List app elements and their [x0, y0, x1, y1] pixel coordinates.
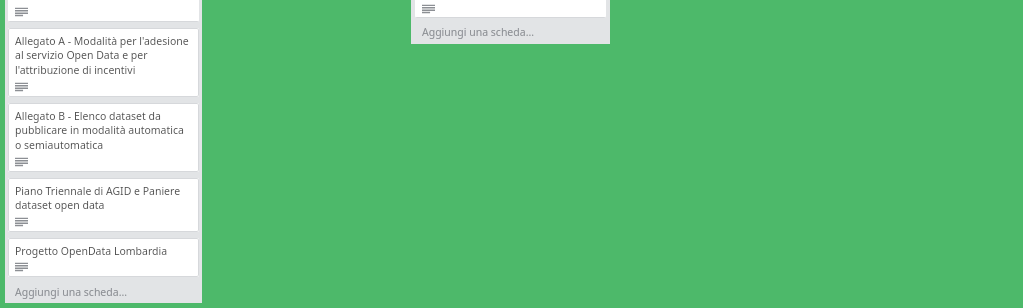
- button[interactable]: Aggiungi una scheda...: [8, 281, 199, 302]
- staticText: Progetto OpenData Lombardia: [15, 244, 168, 258]
- other: Description: [15, 157, 28, 167]
- button[interactable]: Progetto OpenData Lombardia: [8, 238, 199, 277]
- staticText: Allegato A - Modalità per l'adesione al …: [15, 34, 192, 78]
- staticText: Piano Triennale di AGID e Paniere datase…: [15, 184, 192, 213]
- other: Description: [15, 262, 28, 272]
- staticText: Aggiungi una scheda...: [422, 25, 535, 39]
- button[interactable]: Allegato A - Modalità per l'adesione al …: [8, 28, 199, 97]
- button[interactable]: Description: [8, 0, 199, 22]
- staticText: Allegato B - Elenco dataset da pubblicar…: [15, 109, 192, 153]
- other: Description: [422, 4, 435, 14]
- other: Description: [15, 82, 28, 92]
- staticText: Aggiungi una scheda...: [15, 285, 128, 299]
- other: Description: [15, 7, 28, 17]
- button[interactable]: Piano Triennale di AGID e Paniere datase…: [8, 178, 199, 232]
- other: Description: [15, 217, 28, 227]
- button[interactable]: Aggiungi una scheda...: [415, 21, 606, 42]
- button[interactable]: Allegato B - Elenco dataset da pubblicar…: [8, 103, 199, 172]
- button[interactable]: Description: [415, 0, 606, 18]
